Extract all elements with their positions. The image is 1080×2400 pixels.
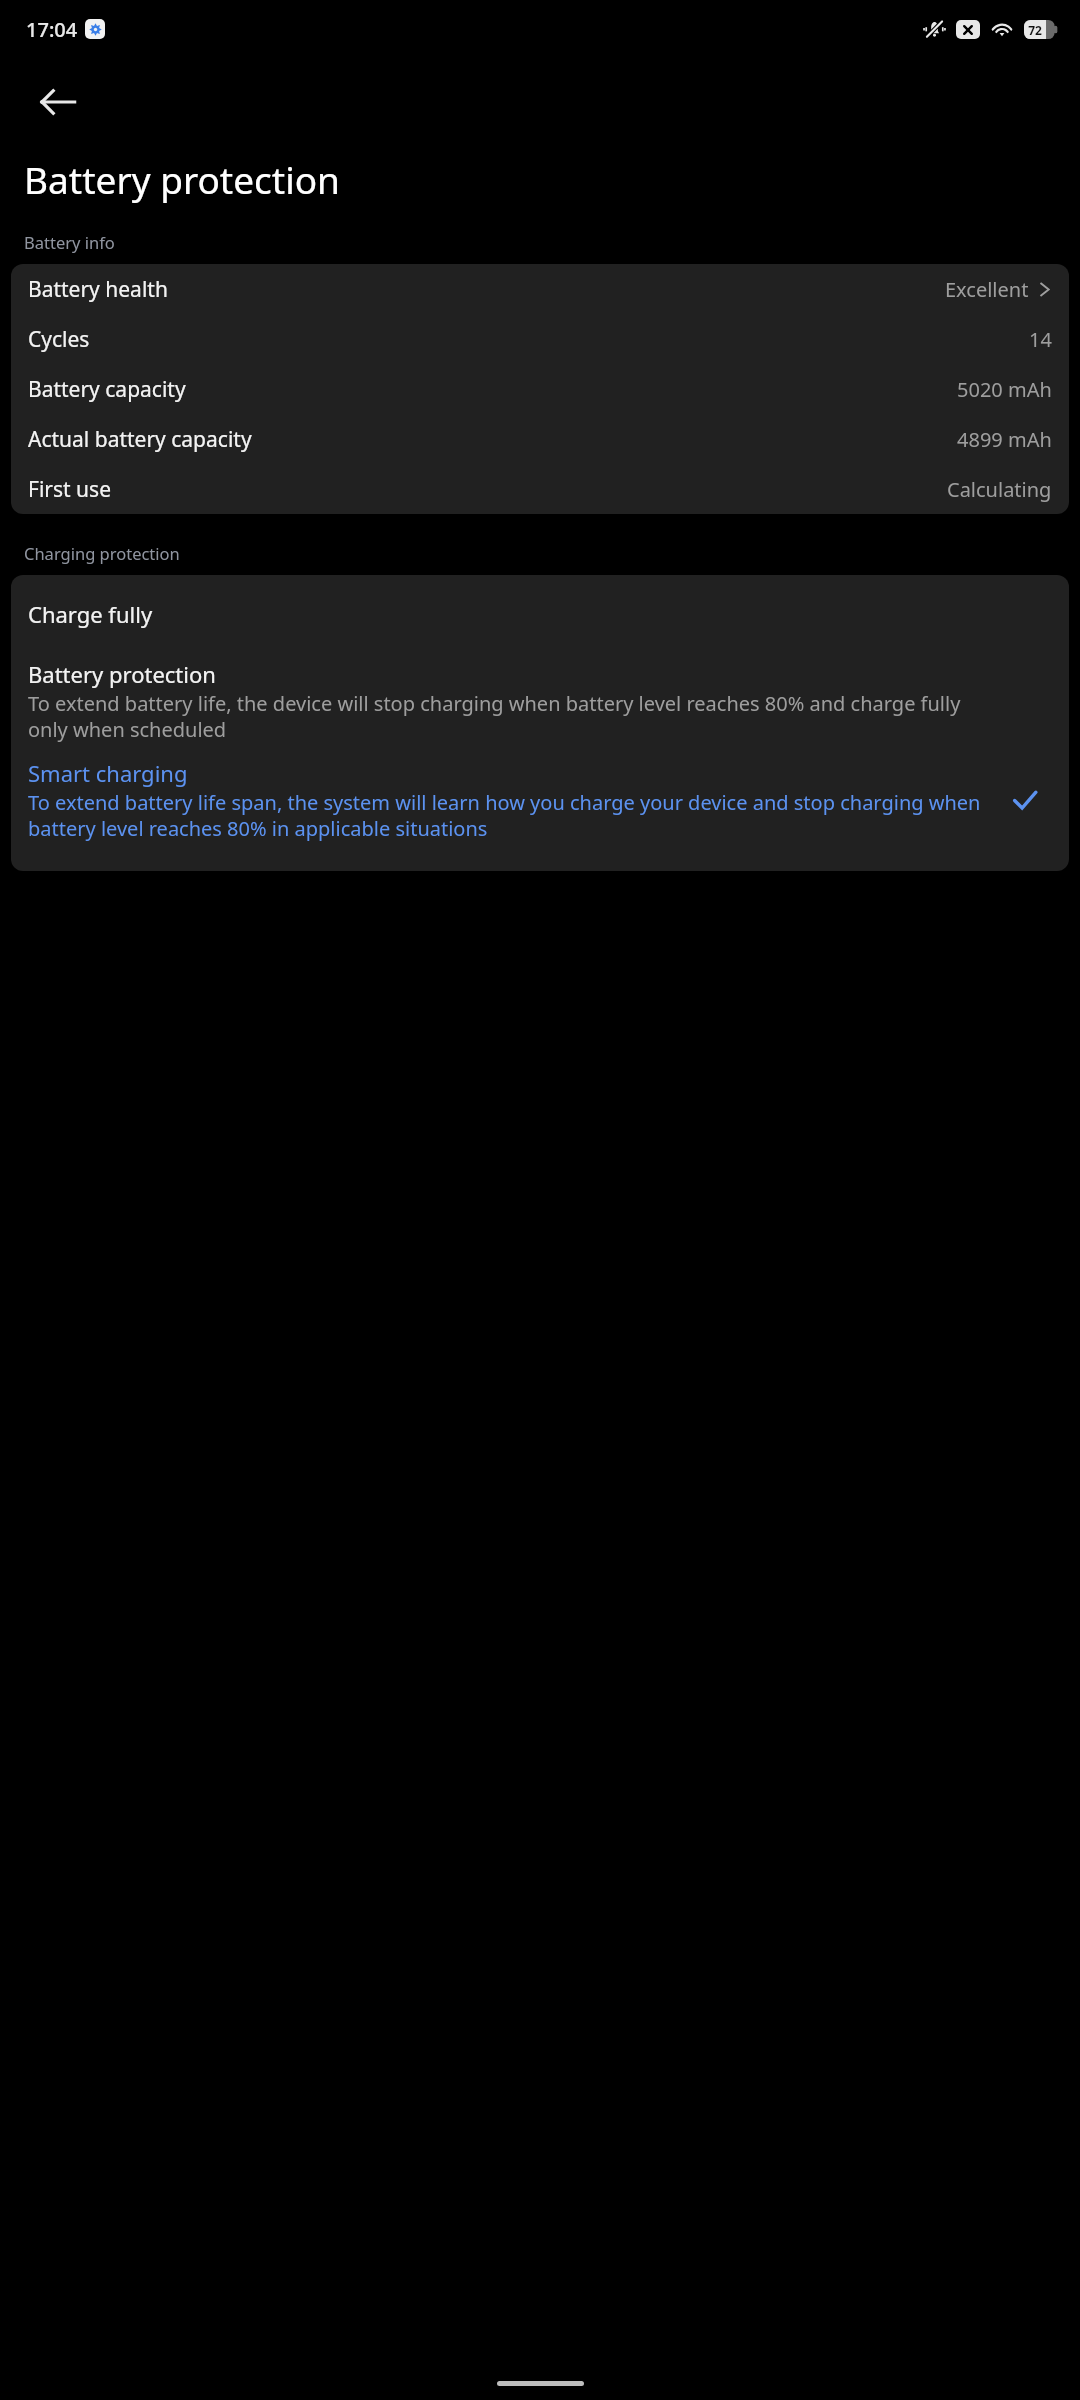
button[interactable]: Battery protection <box>11 651 1069 750</box>
button[interactable]: Smart charging <box>11 750 1069 849</box>
staticText: Calculating <box>947 476 1052 503</box>
button[interactable]: Actual battery capacity <box>11 414 1069 464</box>
staticText: Cycles <box>28 325 90 354</box>
button[interactable]: Back <box>28 72 88 132</box>
staticText: 14 <box>1029 326 1052 353</box>
button[interactable]: Battery capacity <box>11 364 1069 414</box>
staticText: Battery protection <box>24 154 340 204</box>
staticText: 17:04 <box>26 16 78 43</box>
staticText: Excellent <box>945 276 1029 303</box>
staticText: Battery protection <box>28 659 216 689</box>
staticText: Battery capacity <box>28 375 186 404</box>
button[interactable]: Battery health <box>11 264 1069 314</box>
staticText: Charge fully <box>28 599 153 629</box>
staticText: 72 <box>1028 22 1042 38</box>
button[interactable]: Charge fully <box>11 575 1069 651</box>
staticText: To extend battery life span, the system … <box>28 789 998 841</box>
staticText: Charging protection <box>24 542 180 564</box>
staticText: Battery info <box>24 231 115 253</box>
staticText: 5020 mAh <box>957 376 1052 403</box>
button[interactable]: First use <box>11 464 1069 514</box>
staticText: First use <box>28 475 111 504</box>
button[interactable]: Cycles <box>11 314 1069 364</box>
staticText: Smart charging <box>28 758 188 788</box>
staticText: 4899 mAh <box>957 426 1052 453</box>
staticText: Battery health <box>28 275 168 304</box>
staticText: Actual battery capacity <box>28 425 252 454</box>
staticText: To extend battery life, the device will … <box>28 690 998 742</box>
